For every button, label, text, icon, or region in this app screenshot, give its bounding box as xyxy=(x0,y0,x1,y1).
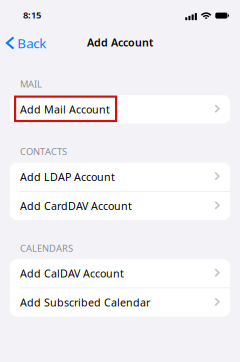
staticText: Add CalDAV Account xyxy=(20,266,124,280)
staticText: Back xyxy=(17,34,46,52)
button[interactable]: Add CalDAV Account xyxy=(10,259,230,288)
staticText: Add Subscribed Calendar xyxy=(20,295,150,310)
staticText: 8:15 xyxy=(23,9,41,21)
staticText: Add Account xyxy=(87,35,153,49)
staticText: CALENDARS xyxy=(20,242,73,254)
staticText: CONTACTS xyxy=(20,145,67,158)
staticText: Add LDAP Account xyxy=(20,170,115,184)
button[interactable]: Add CardDAV Account xyxy=(10,192,230,220)
staticText: Add Mail Account xyxy=(20,102,110,116)
staticText: Add CardDAV Account xyxy=(20,199,132,213)
button[interactable]: Add Subscribed Calendar xyxy=(10,288,230,317)
button[interactable]: Add Mail Account xyxy=(10,95,230,123)
button[interactable]: Add LDAP Account xyxy=(10,162,230,191)
staticText: MAIL xyxy=(20,78,42,90)
button[interactable]: Back xyxy=(0,29,53,57)
